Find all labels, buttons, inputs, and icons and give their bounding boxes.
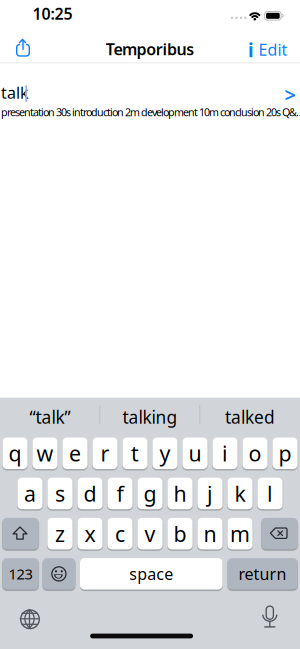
button[interactable]: talking: [102, 399, 198, 435]
button[interactable]: f: [107, 478, 133, 509]
button[interactable]: Emoji: [43, 558, 75, 590]
button[interactable]: b: [167, 518, 193, 549]
button[interactable]: u: [182, 437, 208, 469]
button[interactable]: o: [242, 437, 268, 469]
button[interactable]: Expand: [284, 81, 295, 108]
staticText: Edit: [258, 39, 287, 60]
button[interactable]: return: [228, 558, 298, 590]
staticText: s: [55, 479, 65, 508]
button[interactable]: j: [197, 478, 223, 509]
staticText: c: [115, 519, 125, 548]
button[interactable]: Dictate: [258, 603, 282, 633]
staticText: z: [55, 519, 65, 548]
button[interactable]: h: [167, 478, 193, 509]
button[interactable]: n: [197, 518, 223, 549]
button[interactable]: l: [257, 478, 283, 509]
button[interactable]: t: [122, 437, 148, 469]
staticText: talk: [1, 82, 29, 103]
button[interactable]: g: [137, 478, 163, 509]
staticText: “talk”: [29, 405, 70, 428]
staticText: d: [83, 479, 96, 508]
button[interactable]: Share: [11, 35, 35, 61]
button[interactable]: s: [47, 478, 73, 509]
button[interactable]: v: [137, 518, 163, 549]
staticText: l: [267, 479, 273, 508]
staticText: Temporibus: [106, 38, 194, 60]
staticText: return: [239, 563, 287, 584]
staticText: f: [116, 479, 123, 508]
staticText: j: [207, 479, 213, 508]
staticText: t: [131, 439, 139, 467]
staticText: 10:25: [32, 3, 72, 24]
staticText: >: [284, 81, 295, 108]
button[interactable]: x: [77, 518, 103, 549]
button[interactable]: c: [107, 518, 133, 549]
staticText: p: [278, 439, 291, 467]
staticText: 123: [8, 564, 32, 584]
button[interactable]: “talk”: [2, 399, 98, 435]
button[interactable]: p: [272, 437, 298, 469]
staticText: u: [188, 439, 201, 467]
button[interactable]: w: [32, 437, 58, 469]
staticText: h: [173, 479, 186, 508]
staticText: talked: [225, 405, 275, 428]
button[interactable]: r: [92, 437, 118, 469]
button[interactable]: Shift: [2, 518, 39, 549]
staticText: i: [248, 38, 254, 62]
staticText: y: [159, 439, 170, 467]
staticText: k: [234, 479, 245, 508]
staticText: a: [24, 479, 36, 508]
staticText: b: [173, 519, 186, 548]
button[interactable]: k: [227, 478, 253, 509]
button[interactable]: Next keyboard: [18, 607, 42, 631]
staticText: m: [230, 519, 250, 548]
button[interactable]: d: [77, 478, 103, 509]
button[interactable]: space: [80, 558, 223, 590]
button[interactable]: y: [152, 437, 178, 469]
button[interactable]: talked: [202, 399, 298, 435]
staticText: x: [84, 519, 95, 548]
staticText: q: [8, 439, 21, 467]
staticText: talking: [122, 405, 177, 428]
button[interactable]: q: [2, 437, 28, 469]
staticText: presentation 30s introduction 2m develop…: [1, 105, 300, 119]
staticText: space: [129, 563, 173, 584]
button[interactable]: Delete: [261, 518, 298, 549]
button[interactable]: e: [62, 437, 88, 469]
button[interactable]: Edit: [258, 39, 287, 60]
button[interactable]: m: [227, 518, 253, 549]
staticText: r: [100, 439, 109, 467]
button[interactable]: a: [17, 478, 43, 509]
button[interactable]: i: [212, 437, 238, 469]
button[interactable]: Numbers: [2, 558, 39, 590]
staticText: w: [36, 439, 53, 467]
staticText: i: [222, 439, 228, 467]
button[interactable]: z: [47, 518, 73, 549]
staticText: g: [143, 479, 156, 508]
staticText: n: [203, 519, 216, 548]
staticText: o: [248, 439, 261, 467]
staticText: e: [69, 439, 81, 467]
button[interactable]: Info: [244, 40, 258, 60]
staticText: v: [144, 519, 155, 548]
